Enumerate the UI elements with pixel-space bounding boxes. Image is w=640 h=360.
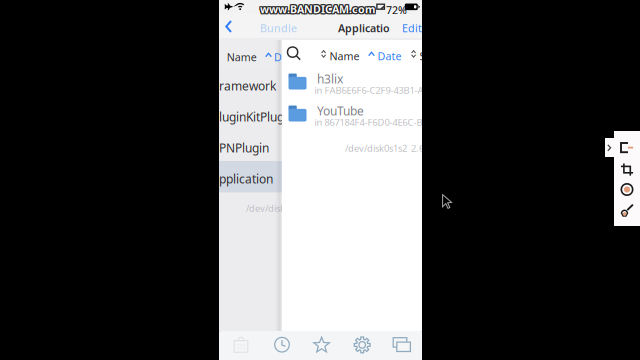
staticText: www.BANDICAM.com xyxy=(259,3,374,17)
button[interactable]: Tabs xyxy=(381,331,421,360)
staticText: ramework xyxy=(219,78,276,94)
staticText: Applicatio xyxy=(338,21,390,35)
staticText: www.BANDICAM.com xyxy=(261,1,376,15)
button[interactable]: Edit xyxy=(400,14,428,38)
staticText: D xyxy=(274,50,282,64)
staticText: 72% xyxy=(386,3,407,17)
button[interactable]: Bundle xyxy=(219,14,299,38)
staticText: 2.6 xyxy=(411,142,424,154)
button[interactable]: Favorites xyxy=(301,331,341,360)
staticText: Edit xyxy=(402,21,422,35)
button[interactable]: Select region xyxy=(620,163,633,176)
button[interactable]: h3lix xyxy=(282,68,422,100)
staticText: www.BANDICAM.com xyxy=(261,2,376,16)
staticText: Name xyxy=(227,50,257,64)
button[interactable]: Collapse toolbar xyxy=(605,138,614,157)
staticText: PNPlugin xyxy=(219,140,269,156)
button[interactable]: Clipboard xyxy=(221,331,261,360)
staticText: YouTube xyxy=(317,103,364,119)
button[interactable]: Settings xyxy=(341,331,381,360)
staticText: www.BANDICAM.com xyxy=(260,1,375,15)
button[interactable]: Search xyxy=(283,41,307,67)
staticText: Bundle xyxy=(260,21,297,35)
button[interactable]: S xyxy=(411,42,425,66)
button[interactable]: Record xyxy=(620,183,633,196)
button[interactable]: Date xyxy=(368,42,408,66)
staticText: h3lix xyxy=(317,71,343,87)
button[interactable]: Name xyxy=(321,42,365,66)
staticText: luginKitPlugin xyxy=(219,109,294,125)
button[interactable]: Record window xyxy=(620,142,634,154)
button[interactable]: YouTube xyxy=(282,100,422,132)
staticText: www.BANDICAM.com xyxy=(259,2,374,16)
staticText: /dev/diskl xyxy=(246,202,287,214)
button[interactable]: Draw xyxy=(620,204,633,217)
staticText: /dev/disk0s1s2 xyxy=(345,142,407,154)
staticText: www.BANDICAM.com xyxy=(259,1,374,15)
staticText: S xyxy=(419,49,425,63)
staticText: www.BANDICAM.com xyxy=(260,3,375,17)
staticText: www.BANDICAM.com xyxy=(261,3,376,17)
staticText: in FAB6E6F6-C2F9-43B1-A xyxy=(314,84,423,96)
staticText: www.BANDICAM.com xyxy=(260,2,375,16)
button[interactable]: Recents xyxy=(261,331,301,360)
staticText: pplication xyxy=(219,171,273,187)
staticText: in 867184F4-F6D0-4E6C-B xyxy=(314,116,422,128)
staticText: Date xyxy=(377,49,401,63)
staticText: Name xyxy=(329,49,359,63)
